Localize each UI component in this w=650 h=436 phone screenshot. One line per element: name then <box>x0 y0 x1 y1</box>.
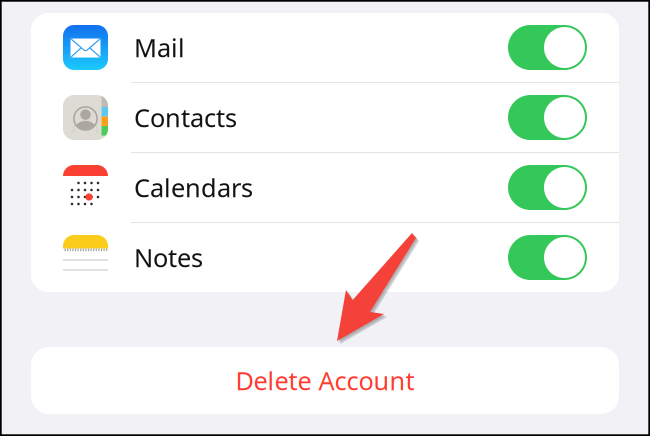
staticText: Contacts <box>134 101 237 134</box>
staticText: Delete Account <box>235 364 414 397</box>
button[interactable]: Mail <box>31 13 619 82</box>
button[interactable]: Calendars <box>31 153 619 222</box>
staticText: Calendars <box>134 171 253 204</box>
staticText: Mail <box>134 31 185 64</box>
button[interactable]: Notes <box>31 223 619 292</box>
button[interactable]: Delete Account <box>31 347 619 414</box>
staticText: Notes <box>134 241 203 274</box>
button[interactable]: Contacts <box>31 83 619 152</box>
